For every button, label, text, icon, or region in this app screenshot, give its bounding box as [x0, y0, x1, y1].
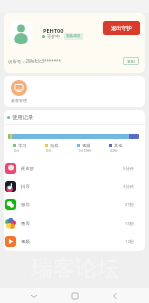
staticText: 复制 [127, 59, 135, 64]
button[interactable]: 夜皮肝 [4, 160, 145, 177]
staticText: 安装成功 [66, 34, 81, 39]
staticText: 抖音 [21, 184, 30, 190]
staticText: 使用记录 [12, 114, 34, 121]
button[interactable]: Back [27, 289, 41, 303]
staticText: 游戏 [50, 143, 59, 148]
staticText: 设备号：2Wefc!c3******* [8, 58, 61, 64]
button[interactable]: 图库 [4, 215, 145, 232]
staticText: 桌面管理 [11, 98, 27, 103]
button[interactable]: Home [68, 289, 82, 303]
staticText: 5分钟 [123, 166, 134, 172]
button[interactable]: Recents [108, 289, 122, 303]
staticText: 学习 [18, 143, 27, 148]
staticText: 0分 [46, 148, 52, 153]
staticText: 1分59秒 [78, 148, 92, 153]
staticText: 12秒 [125, 239, 134, 245]
button[interactable]: 退出守护 [103, 21, 140, 35]
staticText: 3分钟 [123, 184, 134, 190]
button[interactable]: 抖音 [4, 178, 145, 195]
staticText: 其他 [114, 143, 123, 148]
staticText: 微信 [21, 202, 30, 208]
staticText: 守护中 [47, 34, 61, 40]
button[interactable]: 桌面管理 [11, 80, 27, 103]
staticText: 42秒 [110, 148, 118, 153]
staticText: 15秒 [125, 221, 134, 227]
staticText: 视频 [82, 143, 91, 148]
button[interactable]: 微信 [4, 196, 145, 213]
staticText: PEHT00 [43, 27, 64, 35]
staticText: 退出守护 [111, 25, 132, 32]
staticText: 27秒 [125, 202, 134, 208]
button[interactable]: 复制 [123, 57, 139, 65]
staticText: 视频 [21, 239, 30, 245]
staticText: 图库 [21, 221, 30, 227]
staticText: 0分 [14, 148, 20, 153]
button[interactable]: 视频 [4, 233, 145, 250]
staticText: 夜皮肝 [21, 166, 35, 172]
